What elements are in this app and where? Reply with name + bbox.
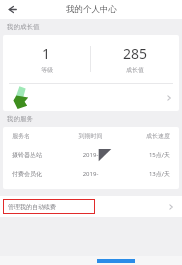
staticText: 我的服务: [7, 115, 33, 123]
staticText: 1: [42, 44, 51, 63]
staticText: 13点/天: [117, 170, 170, 178]
staticText: 摄铃器丛站: [12, 151, 64, 159]
button[interactable]: 摄铃器丛站: [3, 145, 179, 164]
staticText: 15点/天: [117, 151, 170, 159]
staticText: 285: [123, 44, 148, 63]
staticText: 2019-: [64, 151, 117, 159]
staticText: 成长速度: [117, 132, 170, 140]
button[interactable]: 1: [3, 44, 90, 74]
staticText: 等级: [41, 66, 53, 74]
staticText: 成长值: [126, 66, 144, 74]
staticText: 管理我的自动续费: [8, 203, 56, 211]
button[interactable]: [3, 84, 179, 111]
button[interactable]: 付费会员化: [3, 164, 179, 183]
staticText: 2019-: [64, 170, 117, 178]
staticText: 付费会员化: [12, 170, 64, 178]
staticText: 我的个人中心: [66, 4, 117, 15]
staticText: 服务名: [12, 132, 64, 140]
staticText: 我的成长值: [7, 23, 40, 31]
staticText: 到期时间: [64, 132, 117, 140]
button[interactable]: Back: [5, 2, 20, 17]
button[interactable]: 285: [91, 44, 179, 74]
button[interactable]: 管理我的自动续费: [0, 196, 182, 217]
